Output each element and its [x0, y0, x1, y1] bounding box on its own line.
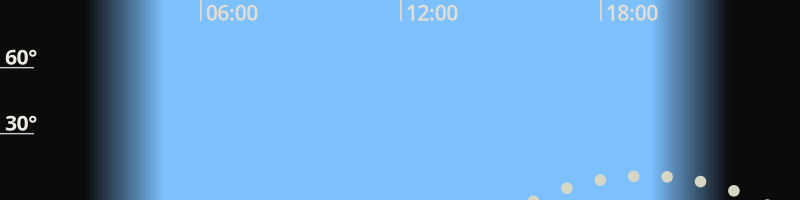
staticText: 60° [5, 42, 37, 71]
staticText: 06:00 [206, 0, 258, 27]
staticText: 12:00 [406, 0, 458, 27]
staticText: 30° [5, 108, 37, 137]
staticText: 18:00 [606, 0, 658, 27]
